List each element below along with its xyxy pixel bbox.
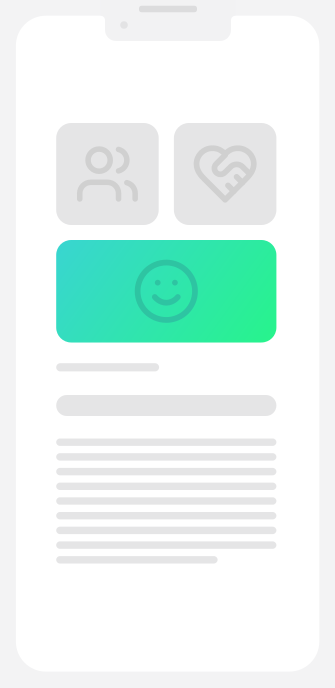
- button[interactable]: Community: [56, 123, 159, 225]
- button[interactable]: Support: [174, 123, 276, 225]
- button[interactable]: Search: [56, 395, 276, 416]
- button[interactable]: How are you feeling: [56, 240, 276, 342]
